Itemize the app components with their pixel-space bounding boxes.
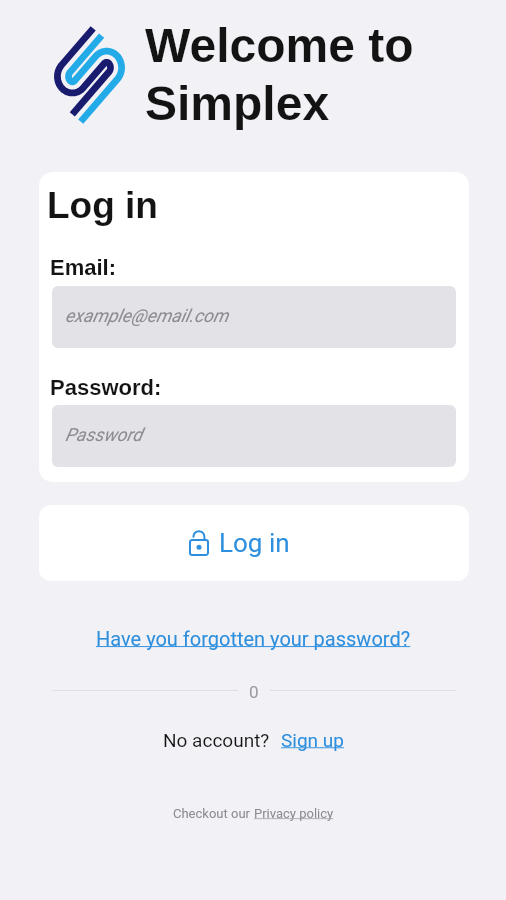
- staticText: Checkout our: [173, 806, 254, 821]
- button[interactable]: Privacy policy: [254, 806, 334, 821]
- staticText: example@email.com: [65, 305, 229, 326]
- staticText: Welcome to: [145, 19, 414, 73]
- button[interactable]: Have you forgotten your password?: [96, 627, 411, 650]
- staticText: No account?: [163, 729, 270, 751]
- staticText: Log in: [219, 528, 290, 558]
- staticText: 0: [249, 682, 259, 702]
- staticText: Log in: [47, 185, 158, 226]
- other: Log in: [189, 530, 209, 556]
- button[interactable]: Log in: [39, 505, 469, 581]
- staticText: Password: [65, 424, 143, 445]
- button[interactable]: Password: [52, 405, 456, 467]
- staticText: Simplex: [145, 77, 330, 131]
- button[interactable]: example@email.com: [52, 286, 456, 348]
- staticText: Password:: [50, 375, 162, 400]
- staticText: Email:: [50, 255, 117, 280]
- button[interactable]: Sign up: [281, 729, 344, 751]
